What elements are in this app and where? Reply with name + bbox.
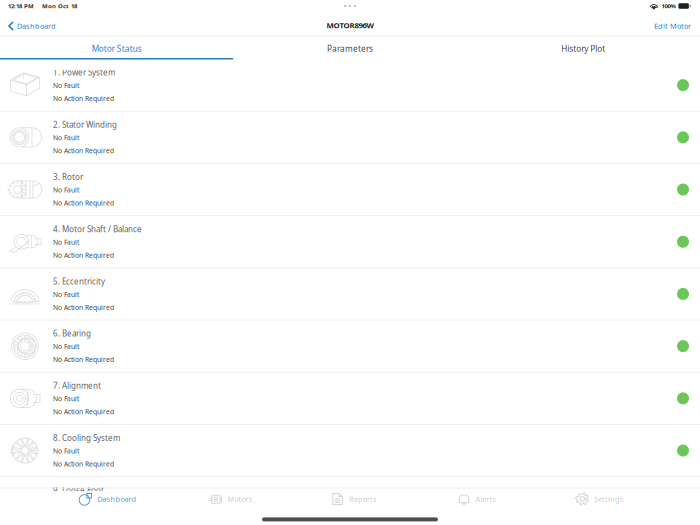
staticText: Dashboard [17, 21, 56, 31]
button[interactable]: 2. Stator Winding [0, 112, 700, 163]
staticText: Motors [227, 494, 252, 504]
staticText: Dashboard [97, 494, 136, 504]
button[interactable]: Reports [292, 489, 415, 509]
button[interactable]: Dashboard [0, 12, 64, 35]
staticText: No Action Required [53, 251, 114, 260]
button[interactable]: 6. Bearing [0, 320, 700, 372]
staticText: No Action Required [53, 146, 114, 155]
staticText: 7. Alignment [53, 380, 101, 391]
staticText: 5. Eccentricity [53, 276, 105, 287]
staticText: Parameters [327, 43, 373, 54]
staticText: No Action Required [53, 198, 114, 207]
staticText: Alerts [475, 494, 496, 504]
button[interactable]: 9. Loose Foot [0, 477, 700, 525]
staticText: No Action Required [53, 94, 114, 103]
button[interactable]: 3. Rotor [0, 164, 700, 215]
staticText: 3. Rotor [53, 171, 83, 182]
staticText: No Action Required [53, 459, 114, 468]
staticText: Edit Motor [654, 21, 691, 31]
staticText: 8. Cooling System [53, 432, 120, 443]
button[interactable]: Motors [169, 489, 292, 509]
staticText: 6. Bearing [53, 328, 91, 339]
staticText: Mon Oct 18 [42, 2, 77, 10]
staticText: 12:18 PM [8, 2, 34, 10]
staticText: No Fault [53, 394, 79, 403]
staticText: Settings [594, 494, 624, 504]
staticText: 2. Stator Winding [53, 119, 117, 130]
staticText: No Fault [53, 446, 79, 455]
button[interactable]: 4. Motor Shaft / Balance [0, 216, 700, 267]
staticText: No Action Required [53, 407, 114, 416]
button[interactable]: Dashboard [46, 489, 169, 509]
staticText: No Fault [53, 499, 79, 508]
staticText: Motor Status [92, 43, 142, 54]
button[interactable]: Parameters [233, 36, 467, 59]
button[interactable]: Motor Status [0, 36, 233, 59]
staticText: No Fault [53, 290, 79, 299]
button[interactable]: Settings [538, 489, 661, 509]
staticText: No Fault [53, 238, 79, 247]
button[interactable]: Alerts [415, 489, 538, 509]
staticText: No Fault [53, 342, 79, 351]
staticText: MOTOR896W [326, 20, 373, 30]
staticText: No Action Required [53, 303, 114, 312]
staticText: No Fault [53, 185, 79, 194]
staticText: No Fault [53, 81, 79, 90]
staticText: 1. Power System [53, 67, 115, 78]
button[interactable]: History Plot [467, 36, 700, 59]
staticText: Reports [349, 494, 377, 504]
button[interactable]: 8. Cooling System [0, 425, 700, 476]
button[interactable]: 7. Alignment [0, 373, 700, 424]
staticText: History Plot [561, 43, 605, 54]
staticText: 4. Motor Shaft / Balance [53, 224, 142, 235]
button[interactable]: 1. Power System [0, 59, 700, 111]
staticText: No Action Required [53, 355, 114, 364]
staticText: No Fault [53, 133, 79, 142]
button[interactable]: Edit Motor [646, 12, 700, 35]
staticText: 100% [661, 2, 675, 10]
button[interactable]: 5. Eccentricity [0, 268, 700, 320]
staticText: 9. Loose Foot [53, 485, 104, 496]
